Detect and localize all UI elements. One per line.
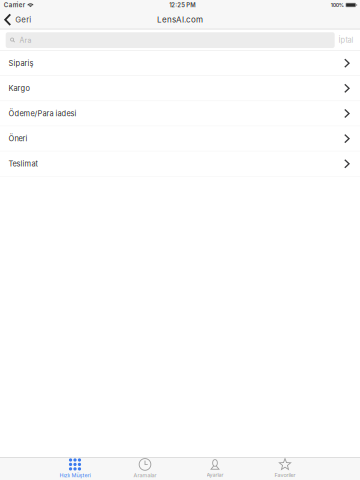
button[interactable]: Ara (6, 32, 335, 48)
staticText: Teslimat (8, 159, 37, 168)
button[interactable]: Sipariş (0, 51, 360, 75)
button[interactable]: Kargo (0, 76, 360, 101)
button[interactable]: Ödeme/Para iadesi (0, 101, 360, 126)
staticText: Favoriler (274, 472, 295, 478)
staticText: Sipariş (8, 59, 33, 68)
staticText: Ara (20, 36, 32, 44)
button[interactable]: Ayarlar (180, 457, 250, 480)
staticText: Geri (15, 15, 31, 24)
button[interactable]: Teslimat (0, 151, 360, 176)
button[interactable]: Aramalar (110, 457, 180, 480)
button[interactable]: Öneri (0, 126, 360, 151)
button[interactable]: Hızlı Müşteri (40, 457, 110, 480)
staticText: Aramalar (133, 472, 156, 479)
button[interactable]: Geri (0, 10, 36, 29)
staticText: İptal (338, 36, 353, 45)
staticText: 12:25 PM (169, 1, 195, 9)
button[interactable]: Favoriler (250, 457, 320, 480)
staticText: Carrier (4, 1, 25, 9)
staticText: Öneri (8, 134, 27, 143)
staticText: Ayarlar (206, 471, 223, 478)
staticText: 100% (331, 2, 344, 8)
staticText: LensAI.com (157, 15, 203, 25)
staticText: Hızlı Müşteri (59, 472, 90, 479)
staticText: Ödeme/Para iadesi (8, 109, 76, 118)
button[interactable]: İptal (336, 32, 356, 48)
staticText: Kargo (8, 84, 29, 93)
